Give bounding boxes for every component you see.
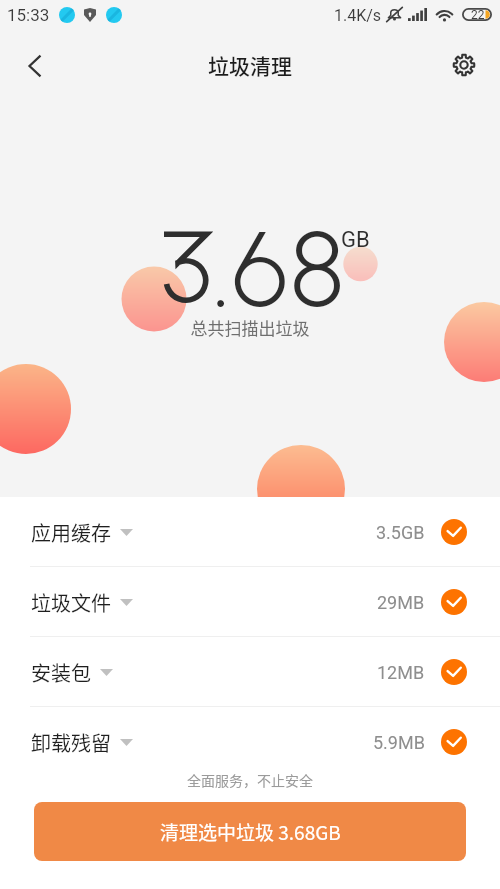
staticText: 22: [471, 8, 485, 21]
button[interactable]: 清理选中垃圾 3.68GB: [34, 802, 466, 861]
staticText: 垃圾文件: [31, 588, 111, 617]
staticText: 5.9MB: [373, 732, 425, 753]
staticText: 清理选中垃圾 3.68GB: [160, 818, 341, 846]
button[interactable]: 安装包: [0, 637, 500, 707]
other: Selected: [441, 589, 467, 615]
staticText: 15:33: [7, 5, 50, 25]
button[interactable]: 卸载残留: [0, 707, 500, 777]
staticText: .68: [213, 207, 347, 332]
button[interactable]: 垃圾文件: [0, 567, 500, 637]
staticText: 12MB: [377, 662, 425, 683]
staticText: 3.5GB: [376, 522, 425, 543]
other: Selected: [441, 729, 467, 755]
staticText: 1.4K/s: [334, 6, 382, 25]
staticText: 全面服务，不止安全: [0, 770, 500, 790]
other: Selected: [441, 519, 467, 545]
staticText: 29MB: [377, 592, 425, 613]
staticText: 安装包: [31, 658, 91, 687]
staticText: 垃圾清理: [0, 50, 500, 80]
staticText: GB: [341, 227, 370, 253]
button[interactable]: 应用缓存: [0, 497, 500, 567]
button[interactable]: Settings: [442, 43, 486, 87]
other: Selected: [441, 659, 467, 685]
staticText: 应用缓存: [31, 518, 111, 547]
staticText: 卸载残留: [31, 728, 111, 757]
button[interactable]: Back: [13, 44, 57, 88]
staticText: 总共扫描出垃圾: [0, 315, 500, 340]
